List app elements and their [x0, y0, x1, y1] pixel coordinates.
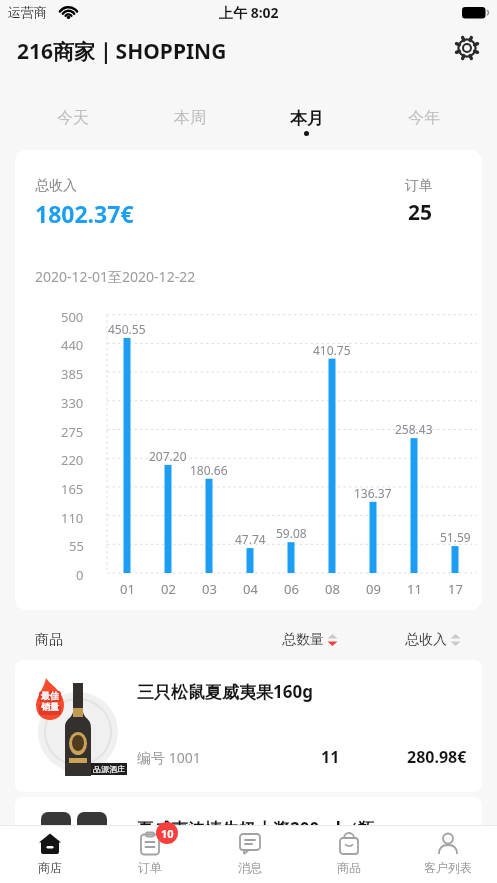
staticText: 216商家｜SHOPPING [17, 37, 227, 66]
staticText: 销量 [41, 701, 59, 712]
staticText: 夏威夷浓情牛奶大酱200ml（瓶 [137, 817, 375, 840]
staticText: 450.55 [108, 321, 146, 337]
staticText: 165 [61, 480, 84, 498]
staticText: 上午 8:02 [219, 3, 279, 22]
staticText: 消息 [238, 860, 262, 875]
button[interactable]: 客户列表 [398, 825, 497, 883]
staticText: 1802.37€ [35, 198, 134, 229]
staticText: 今年 [408, 108, 440, 128]
staticText: 180.66 [190, 462, 228, 478]
staticText: 51.59 [440, 529, 471, 545]
staticText: 订单 [405, 177, 433, 195]
staticText: 410.75 [313, 342, 351, 358]
button[interactable]: 消息 [200, 825, 299, 883]
staticText: 55 [69, 537, 84, 555]
staticText: 订单 [138, 860, 162, 875]
staticText: 本周 [174, 108, 206, 128]
staticText: 今天 [57, 108, 89, 128]
staticText: 商品 [35, 631, 63, 649]
staticText: 17 [448, 580, 463, 598]
staticText: 2020-12-01至2020-12-22 [35, 267, 196, 286]
staticText: 本月 [290, 108, 324, 129]
staticText: 06 [284, 580, 299, 598]
button[interactable]: 今天 [15, 98, 131, 138]
staticText: 总收入 [35, 177, 77, 195]
staticText: 品源酒庄 [93, 764, 125, 774]
staticText: 03 [202, 580, 217, 598]
button[interactable]: 夏威夷浓情牛奶大酱200ml（瓶 [15, 797, 482, 883]
staticText: 商品 [337, 860, 361, 875]
staticText: 运营商 [8, 4, 47, 20]
staticText: 59.08 [276, 525, 307, 541]
staticText: 330 [61, 394, 84, 412]
staticText: 08 [325, 580, 340, 598]
staticText: 220 [61, 451, 84, 469]
button[interactable]: 本周 [131, 98, 248, 138]
staticText: 500 [61, 308, 84, 326]
button[interactable]: 本月 [248, 98, 365, 138]
staticText: 280.98€ [407, 746, 467, 768]
button[interactable]: 总收入 [15, 150, 482, 610]
staticText: 总数量 [282, 631, 324, 649]
staticText: 09 [366, 580, 381, 598]
staticText: 10 [161, 826, 174, 841]
staticText: 编号 1001 [137, 748, 201, 767]
staticText: 0 [76, 566, 84, 584]
staticText: 01 [120, 580, 135, 598]
button[interactable]: 总数量 [282, 631, 338, 649]
staticText: 385 [61, 365, 84, 383]
staticText: 440 [61, 336, 84, 354]
button[interactable]: 10 [100, 825, 200, 883]
button[interactable]: 今年 [365, 98, 482, 138]
staticText: 136.37 [354, 485, 392, 501]
staticText: 总收入 [405, 631, 447, 649]
staticText: 47.74 [235, 531, 266, 547]
staticText: 商店 [38, 860, 62, 875]
staticText: 25 [408, 198, 433, 227]
staticText: 04 [243, 580, 258, 598]
button[interactable]: 商品 [299, 825, 398, 883]
button[interactable] [452, 33, 482, 63]
staticText: 11 [321, 746, 340, 768]
staticText: 客户列表 [424, 860, 472, 875]
staticText: 02 [161, 580, 176, 598]
staticText: 三只松鼠夏威夷果160g [137, 680, 313, 703]
staticText: 最佳 [41, 690, 59, 701]
button[interactable]: 商店 [0, 825, 100, 883]
staticText: 110 [61, 509, 84, 527]
staticText: 207.20 [149, 448, 187, 464]
button[interactable]: 品源酒庄 [15, 660, 482, 792]
staticText: 11 [407, 580, 422, 598]
button[interactable]: 总收入 [405, 631, 461, 649]
staticText: 258.43 [395, 421, 433, 437]
staticText: 275 [61, 423, 84, 441]
